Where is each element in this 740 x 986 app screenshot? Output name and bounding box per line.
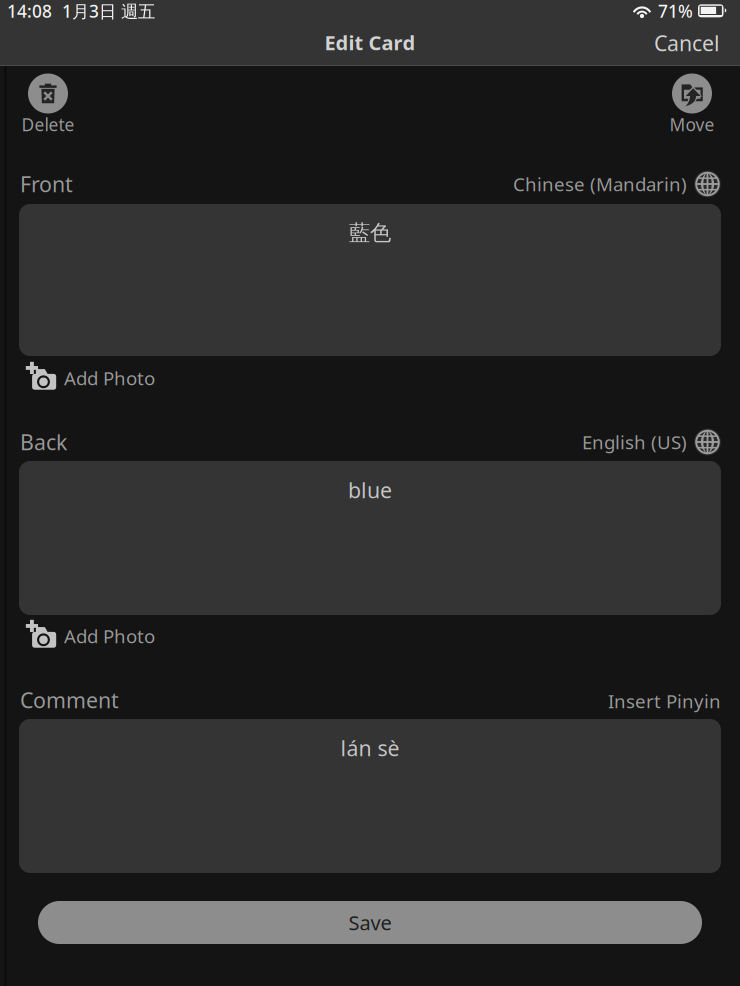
button[interactable]: Delete [13,73,83,133]
button[interactable]: Move [657,73,727,133]
staticText: 1月3日 週五 [52,0,155,22]
staticText: Chinese (Mandarin) [513,172,687,196]
staticText: Back [20,428,67,456]
staticText: English (US) [582,430,687,454]
button[interactable]: Save [38,901,702,944]
staticText: Move [669,113,714,136]
staticText: Insert Pinyin [608,689,721,713]
button[interactable]: Language: Chinese (Mandarin) [421,170,721,198]
staticText: 14:08 [7,0,52,22]
staticText: blue [348,476,392,504]
staticText: Cancel [654,29,720,57]
button[interactable]: Language: English (US) [421,428,721,456]
button[interactable]: Add Photo [25,620,215,652]
staticText: Front [20,170,73,198]
staticText: Comment [20,686,119,714]
staticText: Save [348,909,391,936]
staticText: 藍色 [349,220,391,246]
staticText: 71% [653,0,698,22]
staticText: Add Photo [64,624,155,648]
button[interactable]: Cancel [610,24,720,62]
staticText: Delete [21,113,74,136]
staticText: Add Photo [64,366,155,390]
button[interactable]: Add Photo [25,362,215,394]
staticText: Edit Card [324,29,415,56]
staticText: lán sè [340,734,399,762]
button[interactable]: Insert Pinyin [501,687,721,715]
